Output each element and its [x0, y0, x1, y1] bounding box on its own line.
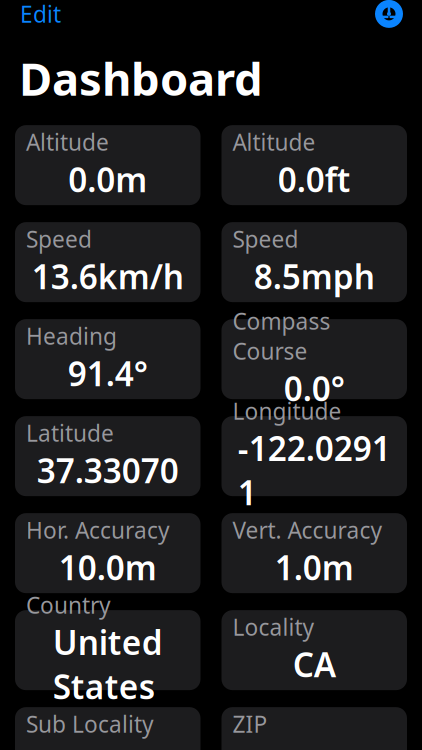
staticText: Locality — [232, 612, 314, 642]
button[interactable]: ZIP — [221, 707, 407, 750]
staticText: Heading — [26, 321, 117, 351]
staticText: Altitude — [232, 127, 315, 157]
button[interactable]: Heading — [15, 319, 200, 399]
button[interactable]: Settings — [372, 0, 406, 31]
staticText: Longitude — [232, 396, 341, 426]
staticText: Sub Locality — [26, 709, 154, 739]
button[interactable]: Longitude — [221, 416, 407, 496]
button[interactable]: Hor. Accuracy — [15, 513, 200, 593]
staticText: 8.5mph — [254, 254, 375, 298]
staticText: Compass Course — [232, 306, 330, 366]
button[interactable]: Altitude — [15, 125, 200, 205]
staticText: 0.0° — [284, 366, 345, 410]
button[interactable]: Country — [15, 610, 200, 690]
staticText: Dashboard — [19, 48, 263, 108]
staticText: Latitude — [26, 418, 114, 448]
staticText: 13.6km/h — [32, 254, 184, 298]
staticText: 0.0m — [68, 157, 147, 201]
button[interactable]: Latitude — [15, 416, 200, 496]
staticText: Vert. Accuracy — [232, 515, 382, 545]
button[interactable]: Vert. Accuracy — [221, 513, 407, 593]
staticText: Edit — [20, 0, 61, 29]
button[interactable]: Speed — [221, 222, 407, 302]
button[interactable]: Edit — [16, 0, 65, 34]
staticText: ZIP — [232, 709, 267, 739]
staticText: United States — [53, 620, 163, 708]
staticText: CA — [293, 642, 336, 686]
staticText: 10.0m — [59, 545, 157, 589]
staticText: -122.02911 — [238, 426, 391, 514]
staticText: Speed — [232, 224, 298, 254]
button[interactable]: Locality — [221, 610, 407, 690]
button[interactable]: Sub Locality — [15, 707, 200, 750]
staticText: Country — [26, 590, 111, 620]
staticText: 0.0ft — [278, 157, 351, 201]
button[interactable]: Speed — [15, 222, 200, 302]
staticText: Speed — [26, 224, 92, 254]
button[interactable]: Altitude — [221, 125, 407, 205]
staticText: 91.4° — [68, 351, 148, 395]
staticText: 37.33070 — [37, 448, 179, 492]
button[interactable]: Compass Course — [221, 319, 407, 399]
staticText: Altitude — [26, 127, 109, 157]
staticText: Hor. Accuracy — [26, 515, 170, 545]
staticText: 1.0m — [275, 545, 354, 589]
